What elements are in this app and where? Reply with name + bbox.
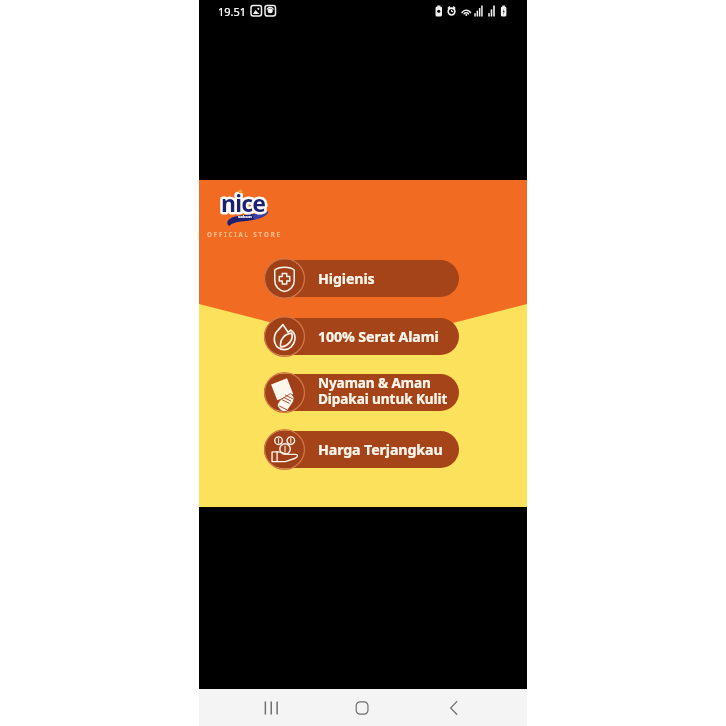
staticText: 100% Serat Alami bbox=[318, 327, 439, 346]
staticText: nice bbox=[221, 187, 266, 218]
staticText: Nyaman & Aman Dipakai untuk Kulit bbox=[318, 373, 448, 408]
button[interactable]: Harga Terjangkau bbox=[264, 429, 459, 470]
button[interactable]: Recent apps bbox=[249, 689, 293, 726]
button[interactable]: Higienis bbox=[264, 258, 459, 299]
button[interactable]: 100% Serat Alami bbox=[264, 316, 459, 357]
staticText: OFFICIAL STORE bbox=[207, 230, 282, 238]
button[interactable]: Back bbox=[432, 689, 476, 726]
staticText: Higienis bbox=[318, 269, 375, 288]
button[interactable]: Nyaman & Aman Dipakai untuk Kulit bbox=[264, 372, 459, 413]
staticText: sabun bbox=[238, 214, 252, 220]
button[interactable]: Home bbox=[340, 689, 384, 726]
staticText: 19.51 bbox=[218, 4, 247, 19]
staticText: Harga Terjangkau bbox=[318, 440, 443, 459]
staticText: nice bbox=[221, 187, 266, 218]
